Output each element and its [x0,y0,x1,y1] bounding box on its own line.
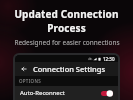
button[interactable]: Auto-Reconnect toggle [101,90,113,97]
button[interactable]: Back [19,64,29,74]
staticText: Updated Connection Process [0,7,133,35]
staticText: Redesigned for easier connections [14,38,120,47]
staticText: Auto-Reconnect [20,89,65,97]
staticText: 12:30 [103,56,115,62]
staticText: OPTIONS [19,78,41,84]
staticText: Connection Settings [33,64,106,74]
button[interactable]: Auto-Reconnect [15,86,118,100]
